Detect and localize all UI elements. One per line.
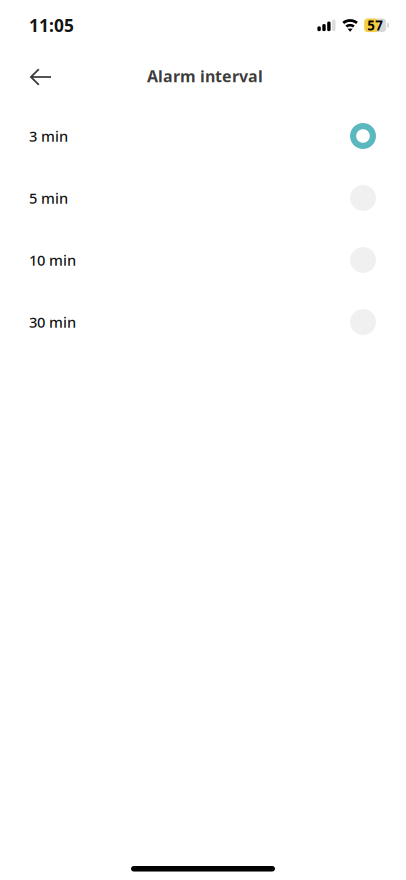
staticText: 11:05 bbox=[29, 14, 74, 37]
staticText: 3 min bbox=[29, 126, 68, 146]
button[interactable]: Not selected bbox=[0, 229, 406, 291]
button[interactable]: Not selected bbox=[0, 291, 406, 353]
staticText: 5 min bbox=[29, 188, 68, 208]
button[interactable]: Not selected bbox=[0, 167, 406, 229]
button[interactable]: Back bbox=[19, 55, 63, 99]
staticText: Alarm interval bbox=[147, 65, 263, 87]
staticText: 57 bbox=[367, 16, 383, 34]
staticText: 30 min bbox=[29, 312, 76, 332]
button[interactable]: Selected bbox=[0, 105, 406, 167]
staticText: 10 min bbox=[29, 250, 76, 270]
